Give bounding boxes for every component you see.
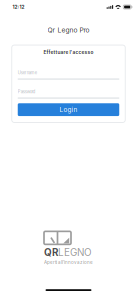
- staticText: Password: [18, 89, 36, 94]
- staticText: 12:12: [12, 4, 24, 10]
- button[interactable]: Login: [18, 103, 119, 116]
- staticText: LEGNO: [58, 246, 92, 258]
- staticText: Aperti all'innovazione: [44, 260, 93, 265]
- staticText: QR: [44, 246, 58, 258]
- button[interactable]: Username: [18, 70, 119, 80]
- staticText: Effettuare l'accesso: [43, 49, 93, 55]
- staticText: Qr Legno Pro: [47, 26, 89, 34]
- staticText: Username: [18, 70, 37, 75]
- button[interactable]: Password: [18, 89, 119, 99]
- staticText: Login: [59, 106, 77, 113]
